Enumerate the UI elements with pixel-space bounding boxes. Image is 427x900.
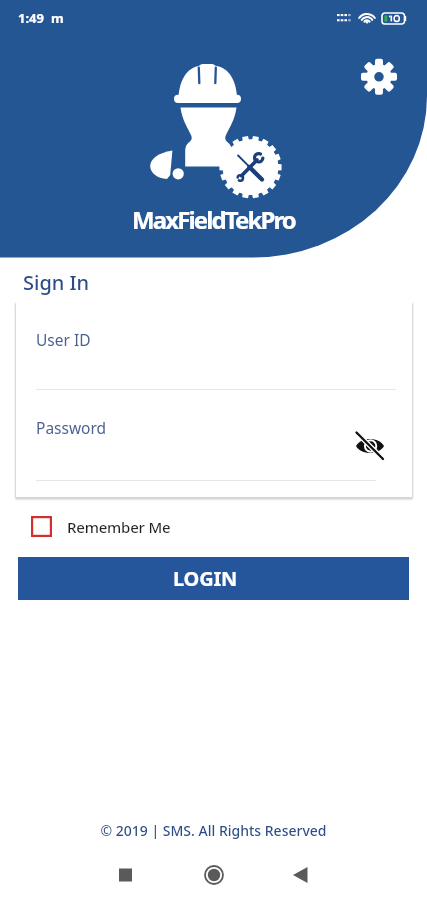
button[interactable]: LOGIN	[18, 557, 409, 600]
staticText: © 2019 | SMS. All Rights Reserved	[0, 821, 427, 840]
staticText: LOGIN	[173, 565, 238, 592]
staticText: m	[51, 9, 64, 27]
button[interactable]: Settings	[361, 59, 397, 95]
staticText: Sign In	[23, 269, 90, 296]
staticText: Password	[36, 417, 107, 438]
button[interactable]: Show password	[353, 429, 387, 463]
staticText: Remember Me	[67, 517, 171, 537]
staticText: MaxFieldTekPro	[0, 203, 427, 236]
button[interactable]: Remember Me	[31, 516, 171, 537]
staticText: 1:49	[18, 9, 44, 27]
staticText: User ID	[36, 329, 91, 350]
